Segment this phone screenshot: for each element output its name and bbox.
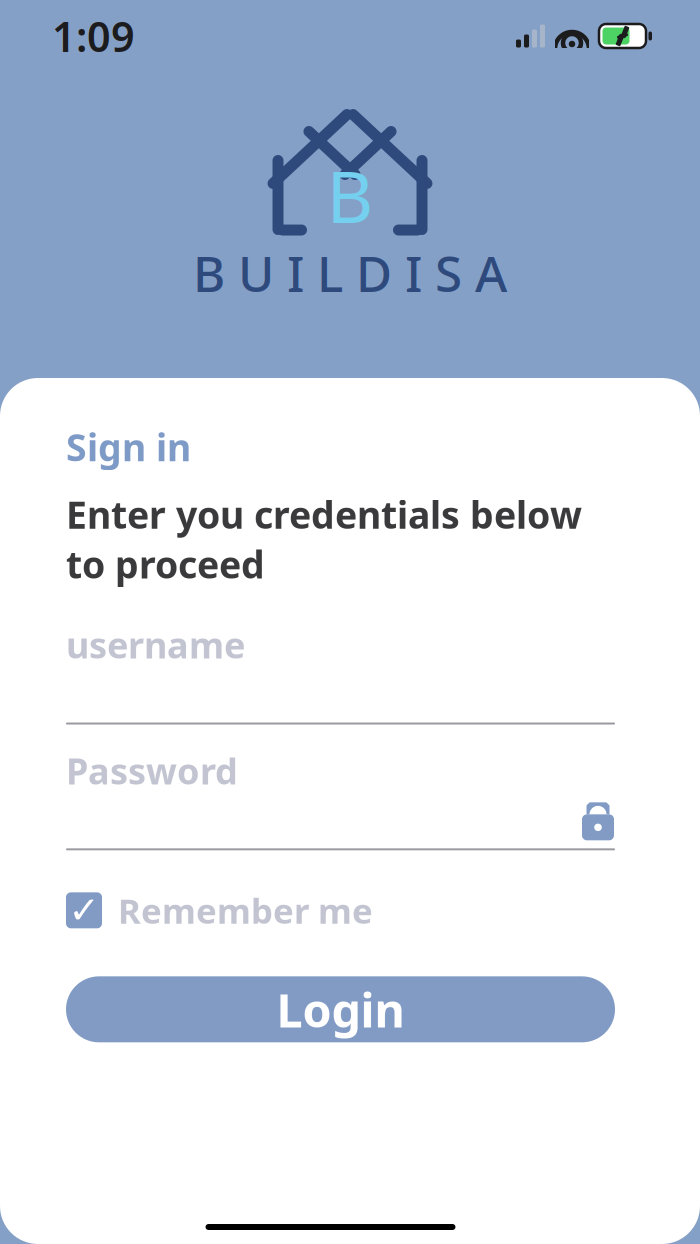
staticText: Remember me <box>118 887 373 933</box>
staticText: 1:09 <box>52 9 135 63</box>
staticText: username <box>66 621 245 668</box>
staticText: B <box>326 147 373 243</box>
staticText: Enter you credentials below to proceed <box>66 490 582 589</box>
button[interactable]: Login <box>66 976 615 1042</box>
staticText: Login <box>276 978 404 1040</box>
staticText: Password <box>66 746 238 794</box>
button[interactable]: ✓ <box>66 888 615 932</box>
staticText: Sign in <box>66 422 191 472</box>
staticText: ✓ <box>68 889 99 932</box>
staticText: B U I L D I S A <box>193 240 507 305</box>
